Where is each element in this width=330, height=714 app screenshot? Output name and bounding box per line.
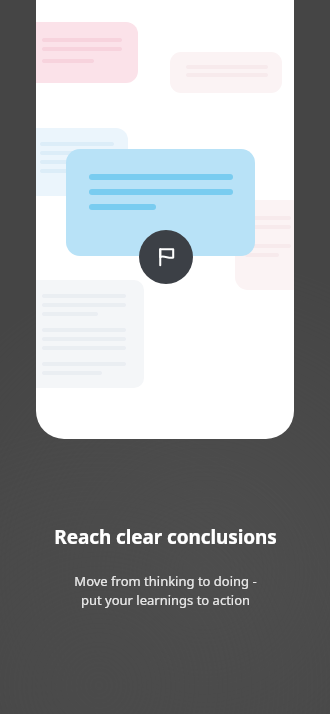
button[interactable] bbox=[66, 149, 255, 256]
staticText: Reach clear conclusions bbox=[54, 524, 277, 550]
button[interactable]: Flag bbox=[139, 230, 193, 284]
staticText: Move from thinking to doing - put your l… bbox=[74, 572, 257, 609]
